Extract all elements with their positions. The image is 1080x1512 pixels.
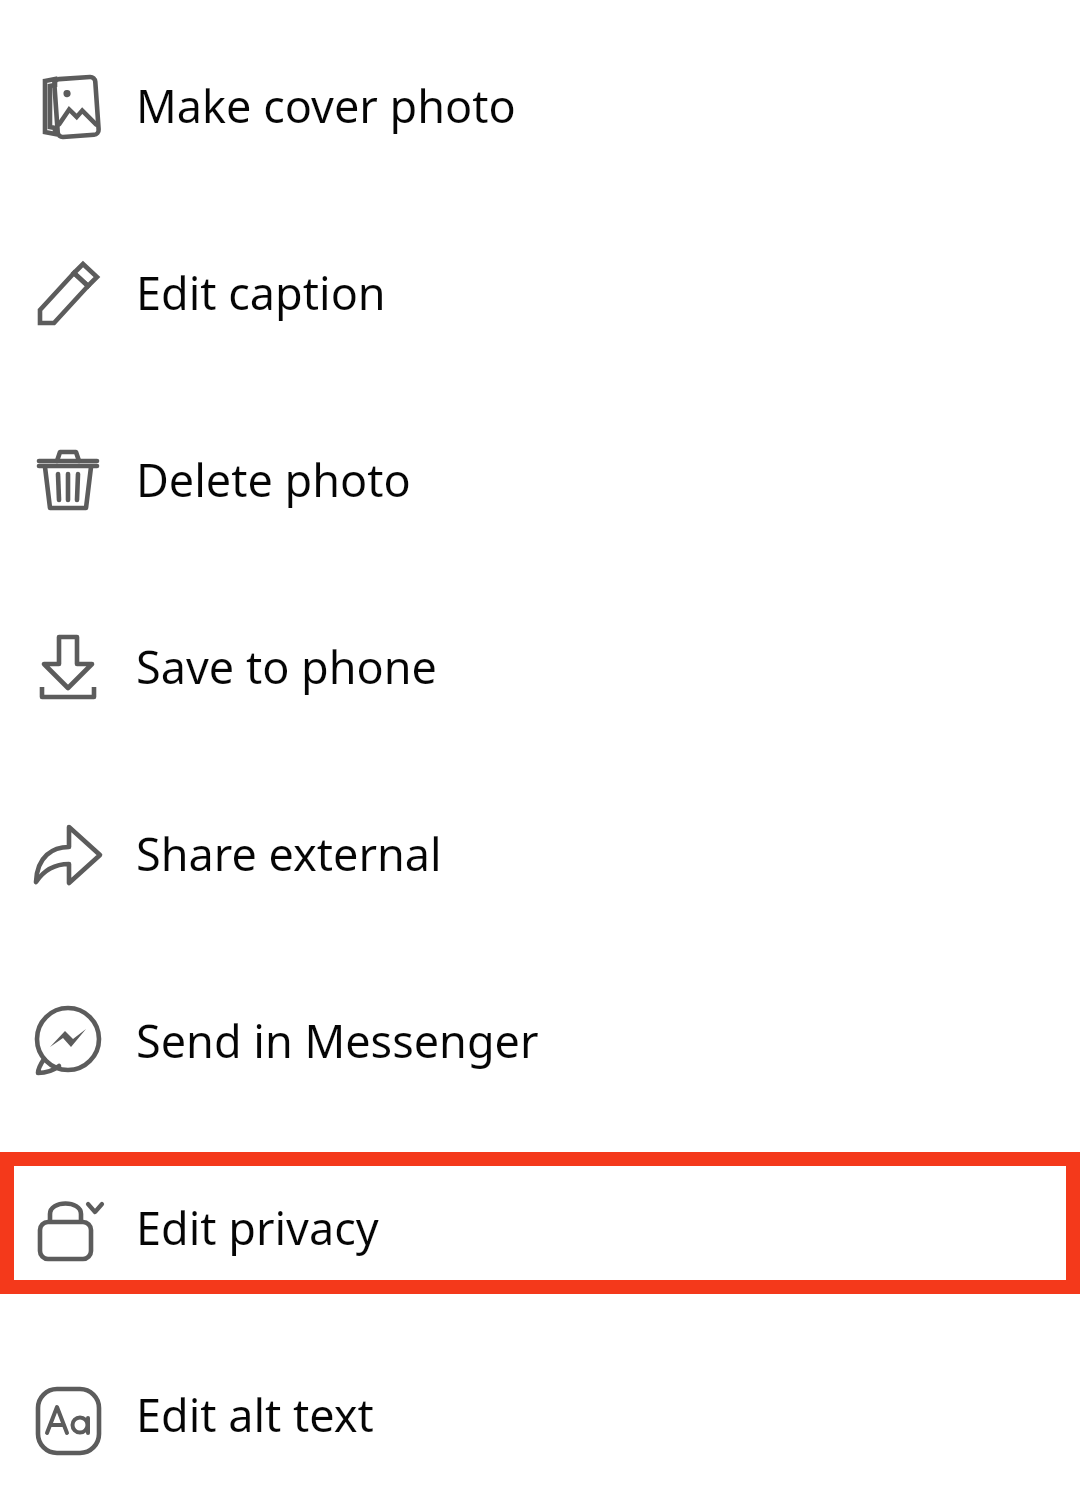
- button[interactable]: Share external: [0, 760, 1080, 947]
- button[interactable]: Edit alt text: [0, 1321, 1080, 1508]
- staticText: Share external: [136, 823, 442, 884]
- staticText: Send in Messenger: [136, 1010, 539, 1071]
- button[interactable]: Make cover photo: [0, 12, 1080, 199]
- staticText: Save to phone: [136, 636, 437, 697]
- staticText: Delete photo: [136, 449, 411, 510]
- button[interactable]: Save to phone: [0, 573, 1080, 760]
- button[interactable]: Edit caption: [0, 199, 1080, 386]
- staticText: Edit privacy: [136, 1197, 379, 1258]
- staticText: Edit alt text: [136, 1384, 374, 1445]
- button[interactable]: Delete photo: [0, 386, 1080, 573]
- button[interactable]: Send in Messenger: [0, 947, 1080, 1134]
- button[interactable]: Edit privacy: [0, 1134, 1080, 1321]
- staticText: Edit caption: [136, 262, 386, 323]
- staticText: Make cover photo: [136, 75, 516, 136]
